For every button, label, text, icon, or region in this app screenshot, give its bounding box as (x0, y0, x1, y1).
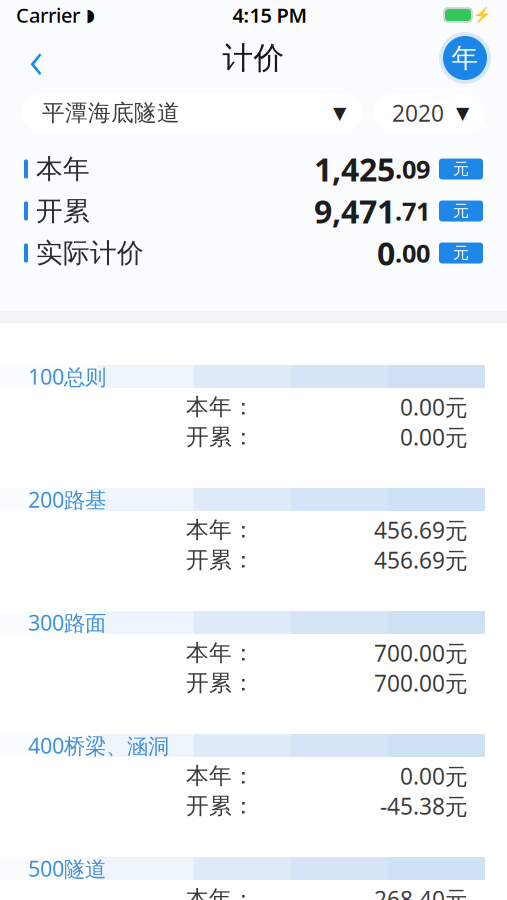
staticText: 本年： (186, 885, 255, 900)
staticText: 元 (453, 201, 469, 221)
staticText: 本年： (186, 393, 255, 421)
staticText: 元 (453, 159, 469, 179)
staticText: 本年： (186, 762, 255, 790)
staticText: 开累： (186, 546, 255, 574)
staticText: 1,425 (314, 148, 395, 190)
button[interactable]: 400桥梁、涵洞 (0, 734, 507, 821)
staticText: 本年： (186, 639, 255, 667)
staticText: 本年： (186, 516, 255, 544)
button[interactable]: 100总则 (0, 365, 507, 452)
staticText: ‹ (29, 23, 43, 93)
staticText: 年 (451, 42, 478, 74)
staticText: 开累： (186, 423, 255, 451)
staticText: 700.00元 (374, 668, 468, 698)
staticText: ▼ (456, 103, 469, 123)
staticText: 0.00元 (400, 761, 468, 791)
staticText: 本年 (36, 153, 90, 185)
staticText: 456.69元 (374, 515, 468, 545)
staticText: 开累 (36, 195, 90, 227)
staticText: .71 (395, 194, 430, 228)
staticText: 平潭海底隧道 (42, 99, 180, 127)
staticText: Carrier (16, 2, 80, 28)
staticText: 开累： (186, 792, 255, 820)
staticText: 计价 (222, 39, 284, 77)
staticText: 100总则 (28, 362, 106, 391)
staticText: -45.38元 (380, 791, 468, 821)
staticText: 700.00元 (374, 638, 468, 668)
button[interactable]: 300路面 (0, 611, 507, 698)
staticText: 456.69元 (374, 545, 468, 575)
staticText: ◗ (86, 5, 95, 25)
staticText: 400桥梁、涵洞 (28, 731, 169, 760)
staticText: 元 (453, 243, 469, 263)
staticText: ▼ (333, 103, 346, 123)
button[interactable]: Back (14, 34, 58, 82)
staticText: 300路面 (28, 608, 106, 637)
staticText: 0.00元 (400, 422, 468, 452)
staticText: 开累： (186, 669, 255, 697)
staticText: 2020 (392, 98, 444, 128)
button[interactable]: 平潭海底隧道 (22, 94, 362, 132)
staticText: 0.00元 (400, 392, 468, 422)
staticText: 0 (377, 232, 395, 274)
staticText: ⚡ (473, 7, 491, 23)
staticText: 500隧道 (28, 854, 106, 883)
staticText: 实际计价 (36, 237, 144, 269)
staticText: 4:15 PM (232, 2, 307, 28)
button[interactable]: 200路基 (0, 488, 507, 575)
button[interactable]: 年 (437, 30, 493, 86)
staticText: 9,471 (314, 190, 395, 232)
button[interactable]: 500隧道 (0, 857, 507, 900)
staticText: 268.40元 (374, 884, 468, 900)
staticText: 200路基 (28, 485, 106, 514)
staticText: .09 (395, 152, 430, 186)
button[interactable]: 2020 (374, 94, 485, 132)
staticText: .00 (395, 236, 430, 270)
